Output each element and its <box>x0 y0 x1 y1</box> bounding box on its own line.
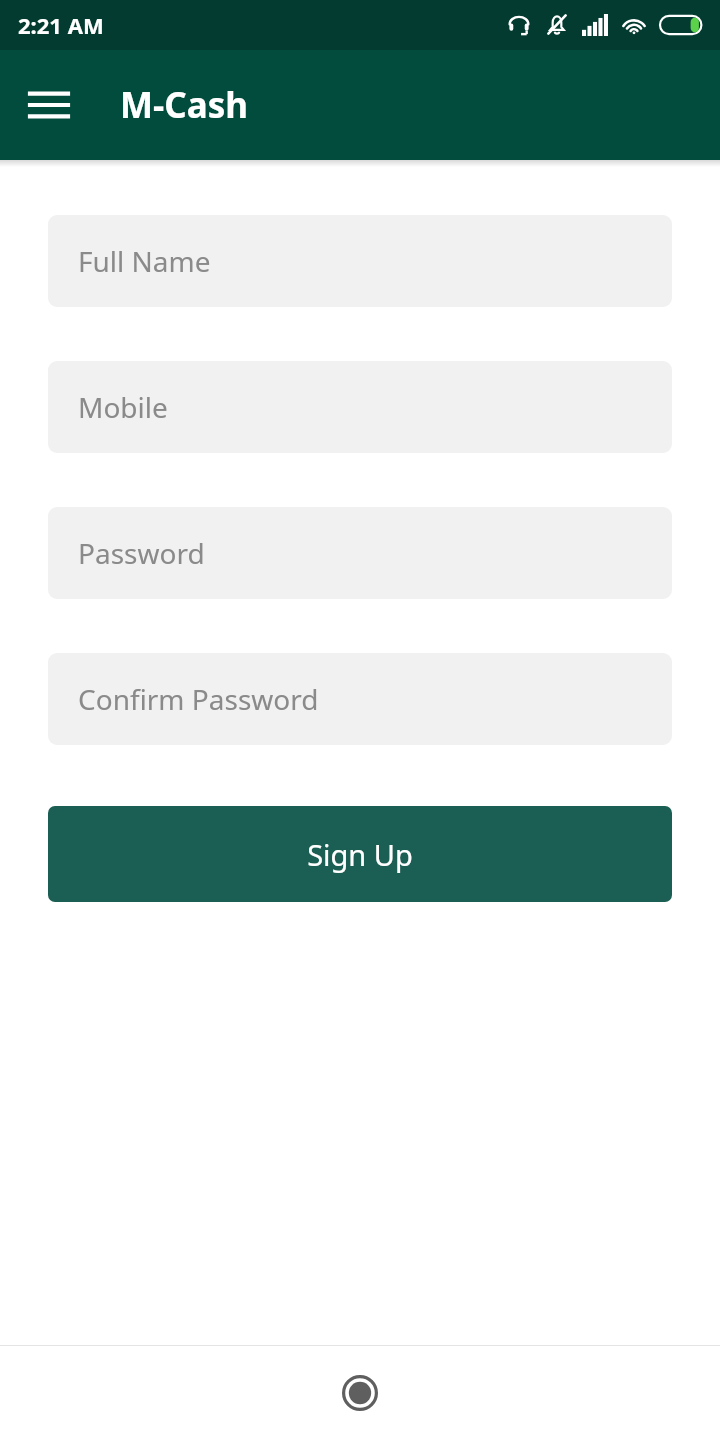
staticText: Full Name <box>78 242 211 280</box>
staticText: M-Cash <box>120 81 248 129</box>
button[interactable]: Password <box>48 507 672 599</box>
staticText: 2:21 AM <box>18 10 104 40</box>
button[interactable]: Open navigation menu <box>22 78 76 132</box>
staticText: Mobile <box>78 388 168 426</box>
button[interactable]: Confirm Password <box>48 653 672 745</box>
button[interactable]: Home <box>240 1346 480 1440</box>
button[interactable]: Mobile <box>48 361 672 453</box>
staticText: Password <box>78 534 205 572</box>
button[interactable]: Full Name <box>48 215 672 307</box>
staticText: Confirm Password <box>78 680 319 718</box>
button[interactable]: Sign Up <box>48 806 672 902</box>
staticText: Sign Up <box>307 835 413 874</box>
